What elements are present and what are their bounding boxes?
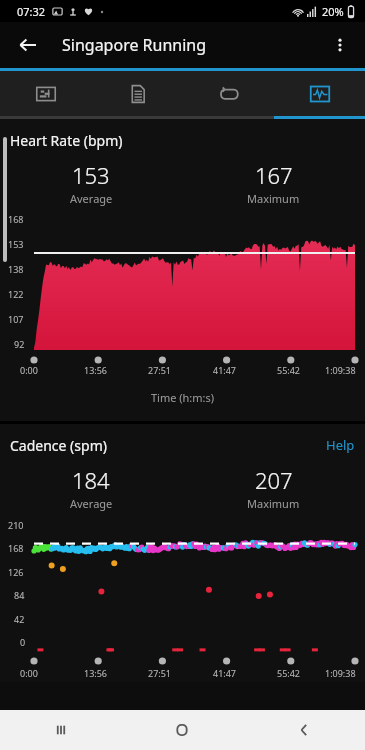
staticText: 207 bbox=[255, 465, 293, 495]
staticText: 07:32 bbox=[17, 4, 46, 19]
button[interactable]: Laps bbox=[183, 71, 274, 116]
staticText: 0:00 bbox=[20, 364, 38, 376]
staticText: Cadence (spm) bbox=[10, 436, 107, 455]
staticText: 1:09:38 bbox=[325, 364, 356, 376]
staticText: 20% bbox=[322, 4, 344, 19]
staticText: 41:47 bbox=[213, 364, 237, 376]
button[interactable]: Back bbox=[10, 27, 46, 63]
staticText: 126 bbox=[8, 566, 24, 578]
staticText: 167 bbox=[255, 160, 293, 190]
staticText: 107 bbox=[8, 313, 24, 325]
staticText: 27:51 bbox=[148, 667, 172, 679]
button[interactable]: More options bbox=[323, 28, 357, 62]
staticText: 210 bbox=[8, 519, 24, 531]
staticText: Maximum bbox=[247, 496, 300, 511]
button[interactable]: Help bbox=[326, 436, 355, 454]
staticText: 41:47 bbox=[213, 667, 237, 679]
button[interactable]: Home bbox=[121, 710, 243, 750]
staticText: Time (h:m:s) bbox=[0, 390, 365, 405]
button[interactable]: Recent apps bbox=[0, 710, 121, 750]
staticText: 138 bbox=[8, 263, 24, 275]
button[interactable]: Details bbox=[92, 71, 183, 116]
staticText: Average bbox=[70, 191, 113, 206]
staticText: 13:56 bbox=[84, 667, 108, 679]
staticText: 55:42 bbox=[277, 364, 301, 376]
staticText: Heart Rate (bpm) bbox=[10, 131, 123, 150]
staticText: Maximum bbox=[247, 191, 300, 206]
staticText: 42 bbox=[14, 613, 25, 625]
staticText: 27:51 bbox=[148, 364, 172, 376]
staticText: 122 bbox=[8, 288, 24, 300]
staticText: 13:56 bbox=[84, 364, 108, 376]
staticText: 84 bbox=[14, 589, 25, 601]
staticText: 55:42 bbox=[277, 667, 301, 679]
staticText: 0:00 bbox=[20, 667, 38, 679]
staticText: 153 bbox=[72, 160, 110, 190]
staticText: 184 bbox=[72, 465, 110, 495]
button[interactable]: Map bbox=[0, 71, 92, 116]
staticText: 153 bbox=[8, 238, 24, 250]
staticText: 92 bbox=[14, 338, 25, 350]
staticText: 168 bbox=[8, 542, 24, 554]
staticText: 1:09:38 bbox=[325, 667, 356, 679]
staticText: Singapore Running bbox=[62, 34, 207, 56]
staticText: 0 bbox=[20, 636, 26, 648]
staticText: 168 bbox=[8, 213, 24, 225]
button[interactable]: Back bbox=[243, 710, 365, 750]
staticText: Help bbox=[326, 436, 355, 454]
button[interactable]: Charts bbox=[274, 71, 365, 116]
staticText: Average bbox=[70, 496, 113, 511]
